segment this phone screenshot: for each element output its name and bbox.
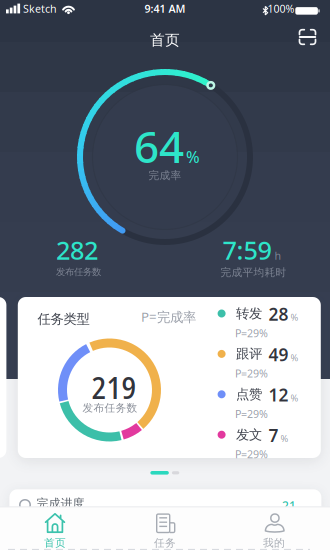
staticText: 282 bbox=[56, 233, 98, 267]
staticText: h bbox=[274, 249, 281, 263]
staticText: 完成平均耗时 bbox=[220, 266, 286, 279]
staticText: % bbox=[186, 146, 200, 167]
staticText: P=29% bbox=[235, 366, 268, 380]
staticText: 12 bbox=[269, 383, 289, 406]
staticText: 我的 bbox=[263, 536, 285, 549]
staticText: 完成进度 bbox=[36, 496, 84, 511]
staticText: P=完成率 bbox=[141, 308, 196, 325]
staticText: 完成率 bbox=[148, 169, 181, 182]
staticText: 100% bbox=[267, 1, 294, 16]
staticText: 21 bbox=[282, 497, 296, 513]
staticText: 任务类型 bbox=[37, 311, 89, 327]
staticText: 跟评 bbox=[236, 346, 262, 362]
staticText: 发布任务数 bbox=[56, 266, 101, 278]
button[interactable] bbox=[9, 489, 321, 550]
staticText: % bbox=[291, 311, 299, 323]
staticText: 219 bbox=[91, 366, 136, 408]
staticText: 49 bbox=[269, 343, 289, 366]
staticText: 7 bbox=[269, 424, 279, 447]
button[interactable]: 首页 bbox=[15, 507, 95, 550]
staticText: 9:41 AM bbox=[144, 1, 185, 16]
button[interactable]: 我的 bbox=[234, 507, 314, 550]
staticText: 7:59 bbox=[222, 233, 271, 267]
button[interactable]: Scan bbox=[292, 22, 322, 52]
staticText: 28 bbox=[269, 302, 289, 325]
button[interactable]: 任务 bbox=[125, 507, 205, 550]
staticText: 64 bbox=[134, 117, 184, 175]
staticText: 任务 bbox=[154, 536, 176, 549]
staticText: P=29% bbox=[235, 326, 268, 340]
staticText: Sketch bbox=[23, 1, 57, 16]
staticText: 发文 bbox=[236, 426, 262, 443]
staticText: % bbox=[281, 432, 289, 444]
button[interactable] bbox=[18, 297, 321, 458]
staticText: 首页 bbox=[44, 536, 66, 549]
staticText: 首页 bbox=[150, 31, 180, 49]
staticText: 转发 bbox=[236, 305, 262, 322]
staticText: 点赞 bbox=[236, 386, 262, 402]
staticText: P=29% bbox=[235, 407, 268, 421]
staticText: % bbox=[291, 392, 299, 404]
staticText: P=29% bbox=[235, 447, 268, 461]
staticText: % bbox=[291, 351, 299, 364]
staticText: 发布任务数 bbox=[82, 401, 137, 414]
